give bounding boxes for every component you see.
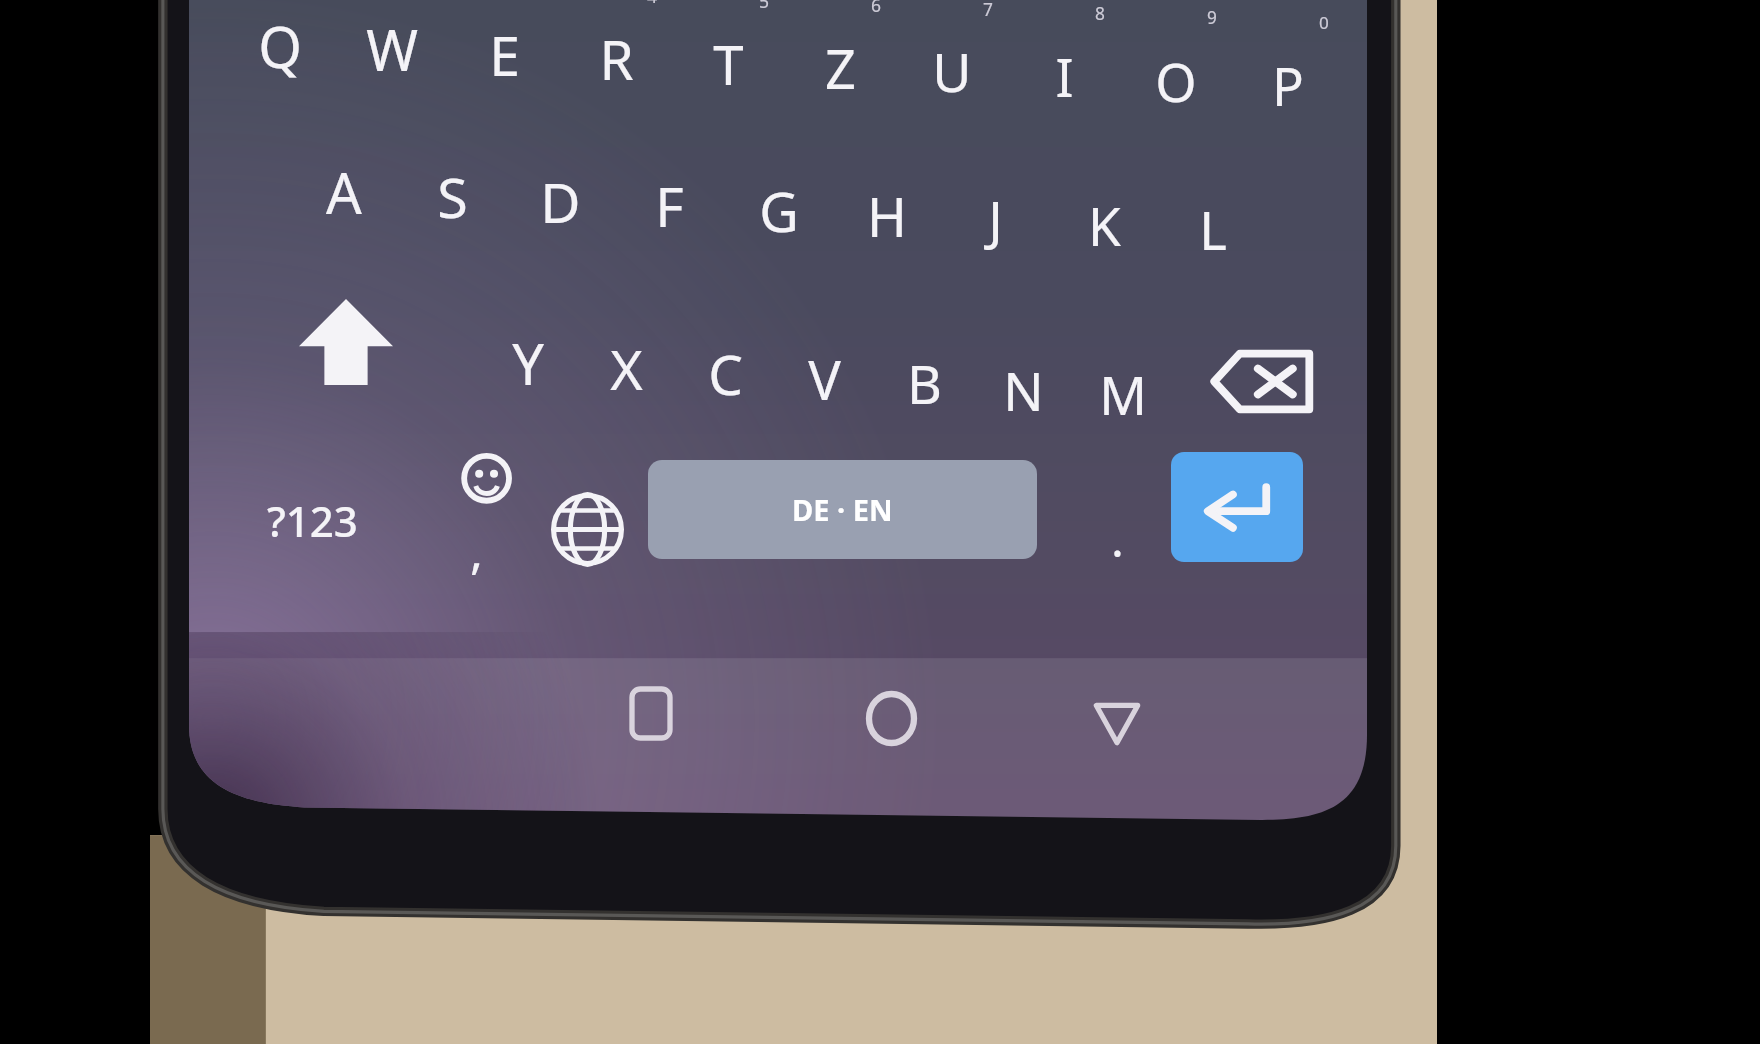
staticText: V — [808, 342, 841, 416]
button[interactable]: N — [974, 311, 1073, 468]
staticText: K — [1088, 189, 1121, 261]
button[interactable]: Recent apps — [595, 669, 707, 758]
button[interactable]: Back — [1061, 679, 1173, 768]
staticText: Z — [825, 31, 856, 105]
staticText: 6 — [871, 0, 882, 17]
button[interactable]: W — [336, 0, 448, 128]
staticText: A — [326, 154, 362, 230]
button[interactable]: B — [875, 305, 974, 462]
button[interactable]: E — [448, 0, 560, 133]
staticText: J — [988, 183, 1003, 256]
staticText: L — [1199, 194, 1227, 266]
staticText: Y — [512, 325, 544, 401]
button[interactable]: O — [1120, 2, 1232, 159]
staticText: D — [540, 164, 581, 239]
staticText: DE · EN — [792, 490, 893, 529]
button[interactable]: Shift — [266, 274, 425, 410]
button[interactable]: K — [1050, 146, 1159, 303]
button[interactable]: S — [398, 118, 507, 275]
staticText: I — [1055, 40, 1074, 113]
staticText: M — [1099, 359, 1147, 431]
button[interactable]: DE · EN — [648, 460, 1037, 559]
staticText: U — [932, 35, 972, 108]
staticText: . — [1111, 506, 1124, 571]
staticText: E — [489, 17, 520, 92]
button[interactable]: M — [1073, 316, 1172, 473]
staticText: 0 — [1319, 11, 1329, 34]
staticText: 7 — [983, 0, 993, 21]
staticText: , — [470, 518, 483, 583]
button[interactable]: Home — [835, 674, 947, 763]
staticText: 5 — [759, 0, 770, 13]
staticText: X — [610, 331, 643, 407]
button[interactable]: J — [941, 141, 1050, 298]
staticText: P — [1272, 50, 1304, 122]
staticText: F — [655, 168, 684, 243]
staticText: G — [759, 174, 799, 248]
staticText: W — [366, 12, 418, 88]
button[interactable]: A — [289, 113, 398, 270]
button[interactable]: H — [832, 137, 941, 294]
button[interactable]: Enter — [1171, 452, 1303, 562]
button[interactable]: I — [1008, 0, 1120, 155]
button[interactable]: Backspace — [1184, 316, 1337, 447]
staticText: R — [599, 21, 634, 96]
staticText: T — [713, 27, 744, 101]
button[interactable]: Y — [478, 284, 577, 441]
button[interactable]: F — [615, 127, 724, 284]
button[interactable]: G — [724, 132, 833, 289]
button[interactable]: U — [896, 0, 1008, 150]
button[interactable]: L — [1158, 151, 1267, 308]
button[interactable]: . — [1070, 465, 1164, 585]
button[interactable]: T — [672, 0, 784, 142]
staticText: 9 — [1207, 6, 1217, 29]
button[interactable]: V — [775, 300, 874, 457]
staticText: C — [708, 336, 743, 411]
staticText: 8 — [1095, 2, 1105, 26]
button[interactable]: Z — [784, 0, 896, 146]
button[interactable]: Change keyboard language — [528, 472, 646, 587]
staticText: Q — [258, 8, 302, 84]
button[interactable]: P — [1232, 7, 1344, 164]
staticText: 4 — [647, 0, 658, 8]
staticText: B — [907, 347, 942, 420]
staticText: O — [1155, 45, 1197, 117]
button[interactable]: Comma, emoji — [425, 447, 537, 583]
button[interactable]: R — [560, 0, 672, 137]
staticText: N — [1003, 354, 1044, 426]
button[interactable]: C — [676, 295, 775, 452]
button[interactable]: Q — [224, 0, 336, 124]
button[interactable]: D — [506, 123, 615, 280]
staticText: ?123 — [267, 492, 358, 549]
staticText: H — [867, 179, 907, 252]
button[interactable]: X — [577, 290, 676, 447]
button[interactable]: ?123 — [230, 458, 395, 583]
staticText: S — [437, 159, 468, 235]
